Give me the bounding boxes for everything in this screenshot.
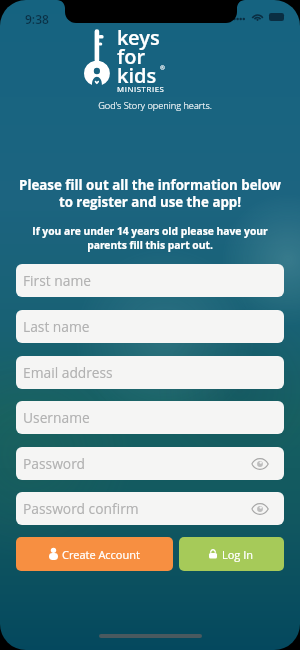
button[interactable]: Create Account <box>16 537 173 571</box>
button[interactable]: Email address <box>16 356 284 389</box>
staticText: First name <box>23 271 91 290</box>
staticText: Create Account <box>62 547 140 562</box>
staticText: kids <box>117 62 157 89</box>
button[interactable]: Show password <box>248 453 272 475</box>
staticText: If you are under 14 years old please hav… <box>0 224 300 252</box>
staticText: for <box>117 43 146 70</box>
button[interactable]: Password <box>16 447 284 480</box>
staticText: Last name <box>23 317 90 336</box>
staticText: Username <box>23 408 90 427</box>
button[interactable]: Show password <box>248 498 272 520</box>
staticText: keys <box>117 24 160 51</box>
button[interactable]: Log In <box>179 537 284 571</box>
staticText: Email address <box>23 363 113 382</box>
button[interactable]: Username <box>16 401 284 434</box>
button[interactable]: Last name <box>16 310 284 343</box>
staticText: ® <box>160 64 165 72</box>
staticText: Password <box>23 454 86 473</box>
staticText: 9:38 <box>25 11 49 27</box>
staticText: MINISTRIES <box>117 84 165 95</box>
button[interactable]: First name <box>16 264 284 297</box>
staticText: Password confirm <box>23 499 139 518</box>
staticText: Please fill out all the information belo… <box>0 176 300 211</box>
button[interactable]: Password confirm <box>16 492 284 525</box>
staticText: God's Story opening hearts. <box>10 99 300 112</box>
staticText: Log In <box>222 547 254 562</box>
